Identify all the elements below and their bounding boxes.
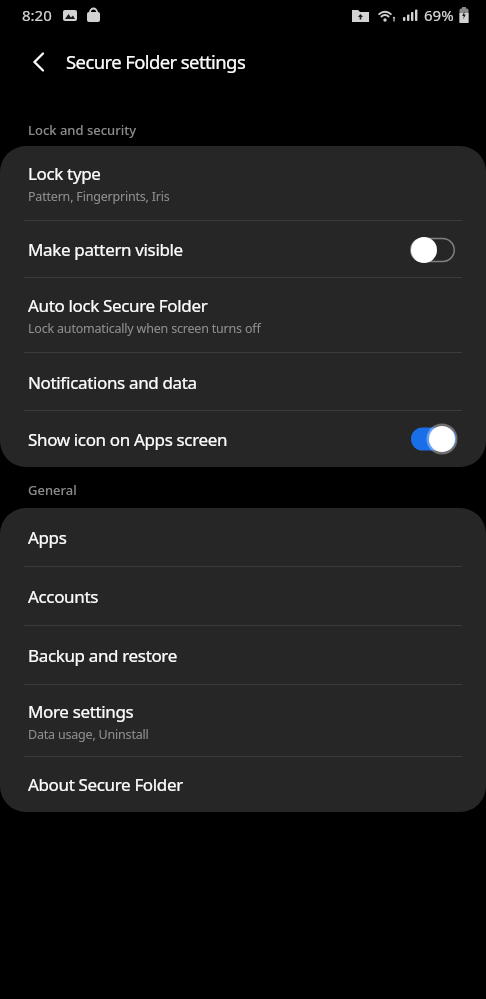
- staticText: Show icon on Apps screen: [28, 428, 228, 451]
- button[interactable]: Auto lock Secure Folder: [0, 278, 486, 353]
- button[interactable]: Backup and restore: [0, 626, 486, 685]
- staticText: Apps: [28, 526, 67, 549]
- staticText: Lock automatically when screen turns off: [28, 320, 261, 337]
- button[interactable]: Show icon on Apps screen: [0, 411, 486, 467]
- button[interactable]: Notifications and data: [0, 353, 486, 411]
- staticText: Pattern, Fingerprints, Iris: [28, 188, 170, 205]
- button[interactable]: About Secure Folder: [0, 757, 486, 812]
- staticText: Notifications and data: [28, 371, 197, 394]
- staticText: Lock type: [28, 162, 101, 185]
- button[interactable]: Make pattern visible: [0, 221, 486, 278]
- staticText: 8:20: [22, 5, 52, 25]
- button[interactable]: Accounts: [0, 567, 486, 626]
- button[interactable]: Lock type: [0, 146, 486, 221]
- staticText: More settings: [28, 700, 134, 723]
- button[interactable]: [0, 34, 56, 90]
- staticText: Backup and restore: [28, 644, 177, 667]
- staticText: Auto lock Secure Folder: [28, 294, 208, 317]
- staticText: General: [28, 481, 77, 499]
- staticText: Data usage, Uninstall: [28, 726, 149, 743]
- button[interactable]: Apps: [0, 508, 486, 567]
- staticText: Lock and security: [28, 121, 137, 139]
- staticText: 69%: [424, 5, 454, 25]
- staticText: Make pattern visible: [28, 238, 183, 261]
- button[interactable]: More settings: [0, 685, 486, 757]
- staticText: Secure Folder settings: [66, 49, 246, 74]
- staticText: About Secure Folder: [28, 773, 183, 796]
- staticText: Accounts: [28, 585, 98, 608]
